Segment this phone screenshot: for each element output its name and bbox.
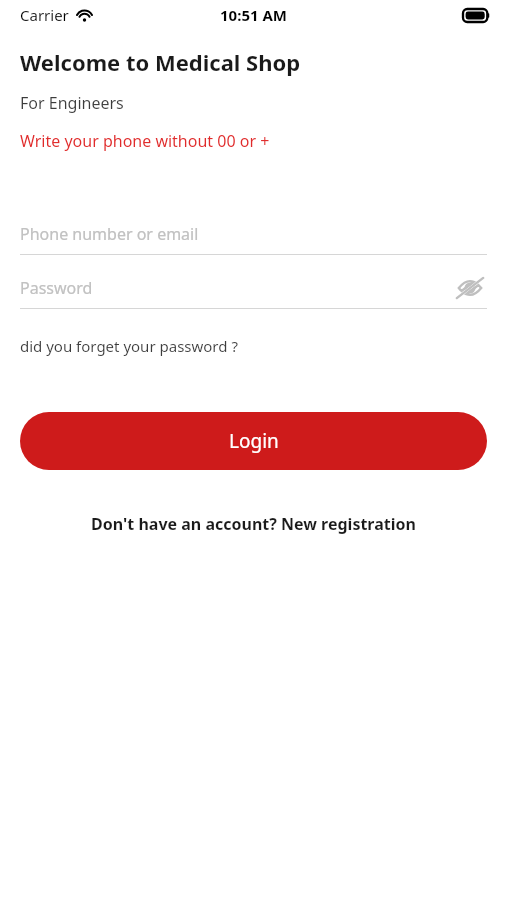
staticText: Don't have an account? New registration: [91, 513, 416, 535]
button[interactable]: Password: [20, 268, 487, 308]
button[interactable]: did you forget your password ?: [20, 336, 238, 356]
button[interactable]: Phone number or email: [20, 214, 487, 254]
staticText: Login: [229, 428, 279, 454]
staticText: Write your phone without 00 or +: [20, 130, 270, 152]
staticText: Welcome to Medical Shop: [20, 47, 301, 77]
staticText: did you forget your password ?: [20, 336, 238, 356]
button[interactable]: Login: [20, 412, 487, 470]
staticText: For Engineers: [20, 92, 124, 114]
staticText: 10:51 AM: [220, 5, 287, 25]
button[interactable]: Show password: [453, 271, 487, 305]
staticText: Phone number or email: [20, 223, 199, 245]
button[interactable]: Don't have an account? New registration: [0, 513, 507, 535]
staticText: Carrier: [20, 5, 69, 25]
staticText: Password: [20, 277, 93, 299]
